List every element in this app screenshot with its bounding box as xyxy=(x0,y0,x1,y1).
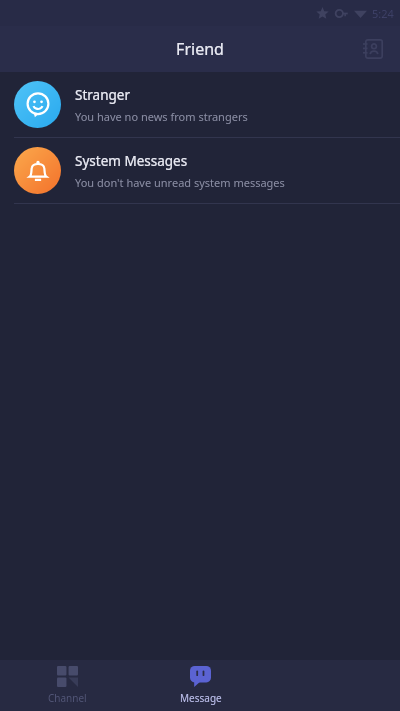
staticText: You have no news from strangers xyxy=(75,109,248,124)
staticText: You don't have unread system messages xyxy=(75,175,285,190)
staticText: 5:24 xyxy=(372,6,394,21)
button[interactable]: System Messages xyxy=(0,138,400,203)
button[interactable]: Contacts xyxy=(354,30,392,68)
button[interactable]: Stranger xyxy=(0,72,400,137)
button[interactable]: Message xyxy=(134,660,267,711)
staticText: Friend xyxy=(176,38,224,60)
staticText: System Messages xyxy=(75,152,188,170)
staticText: Message xyxy=(180,691,222,705)
button[interactable]: Channel xyxy=(0,660,134,711)
staticText: Stranger xyxy=(75,86,130,104)
staticText: Channel xyxy=(48,691,87,705)
